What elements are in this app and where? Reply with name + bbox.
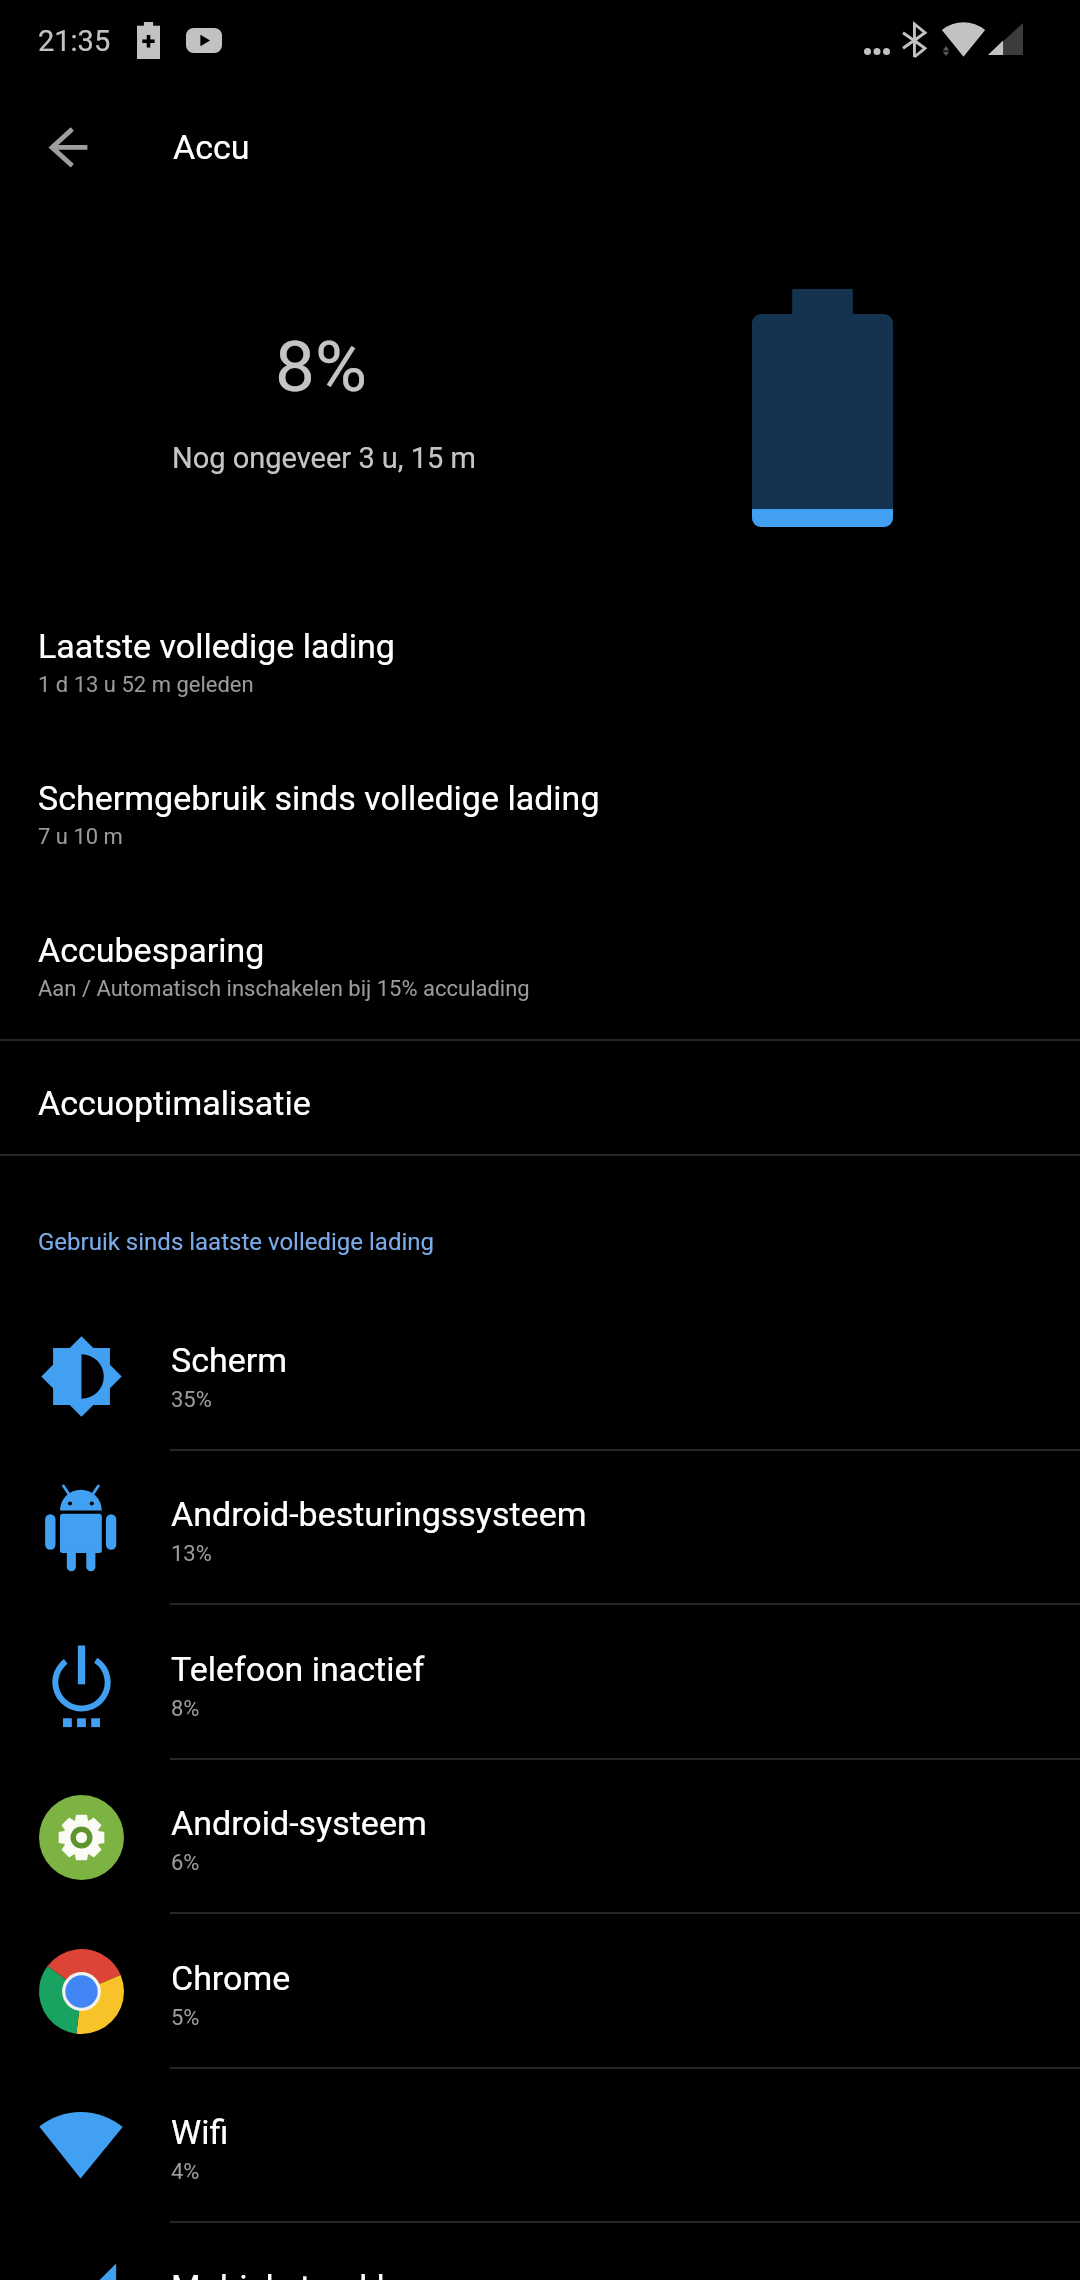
button[interactable]: Android-systeem [0,1759,1080,1914]
staticText: Gebruik sinds laatste volledige lading [38,1228,434,1256]
button[interactable]: Wifi [0,2068,1080,2223]
button[interactable]: Accubesparing [0,888,1080,1040]
staticText: 35% [171,1387,212,1413]
staticText: Telefoon inactief [171,1649,425,1689]
button[interactable]: Chrome [0,1914,1080,2069]
staticText: Accubesparing [38,930,265,970]
staticText: Chrome [171,1958,291,1998]
button[interactable]: Schermgebruik sinds volledige lading [0,736,1080,888]
staticText: 13% [171,1541,212,1567]
staticText: Mobiel stand-by [171,2267,412,2280]
button[interactable]: Scherm [0,1296,1080,1451]
button[interactable]: Android-besturingssysteem [0,1450,1080,1605]
staticText: Android-besturingssysteem [171,1494,587,1534]
staticText: 21:35 [38,24,111,58]
button[interactable]: Laatste volledige lading [0,584,1080,736]
staticText: 5% [171,2005,200,2031]
staticText: Accu [173,127,250,167]
staticText: 4% [171,2159,200,2185]
staticText: 7 u 10 m [38,824,123,850]
staticText: 8% [275,325,367,408]
staticText: 8% [171,1696,200,1722]
staticText: Android-systeem [171,1803,427,1843]
button[interactable]: Mobiel stand-by [0,2223,1080,2280]
staticText: Aan / Automatisch inschakelen bij 15% ac… [38,976,530,1002]
staticText: Wifi [171,2112,229,2152]
staticText: Schermgebruik sinds volledige lading [38,778,600,818]
staticText: 6% [171,1850,200,1876]
staticText: 1 d 13 u 52 m geleden [38,672,254,698]
button[interactable]: Back [27,107,107,187]
staticText: Laatste volledige lading [38,626,395,666]
staticText: Accuoptimalisatie [38,1083,311,1123]
staticText: Nog ongeveer 3 u, 15 m [172,441,476,475]
button[interactable]: Accuoptimalisatie [0,1041,1080,1154]
staticText: Scherm [171,1340,288,1380]
button[interactable]: Telefoon inactief [0,1605,1080,1760]
